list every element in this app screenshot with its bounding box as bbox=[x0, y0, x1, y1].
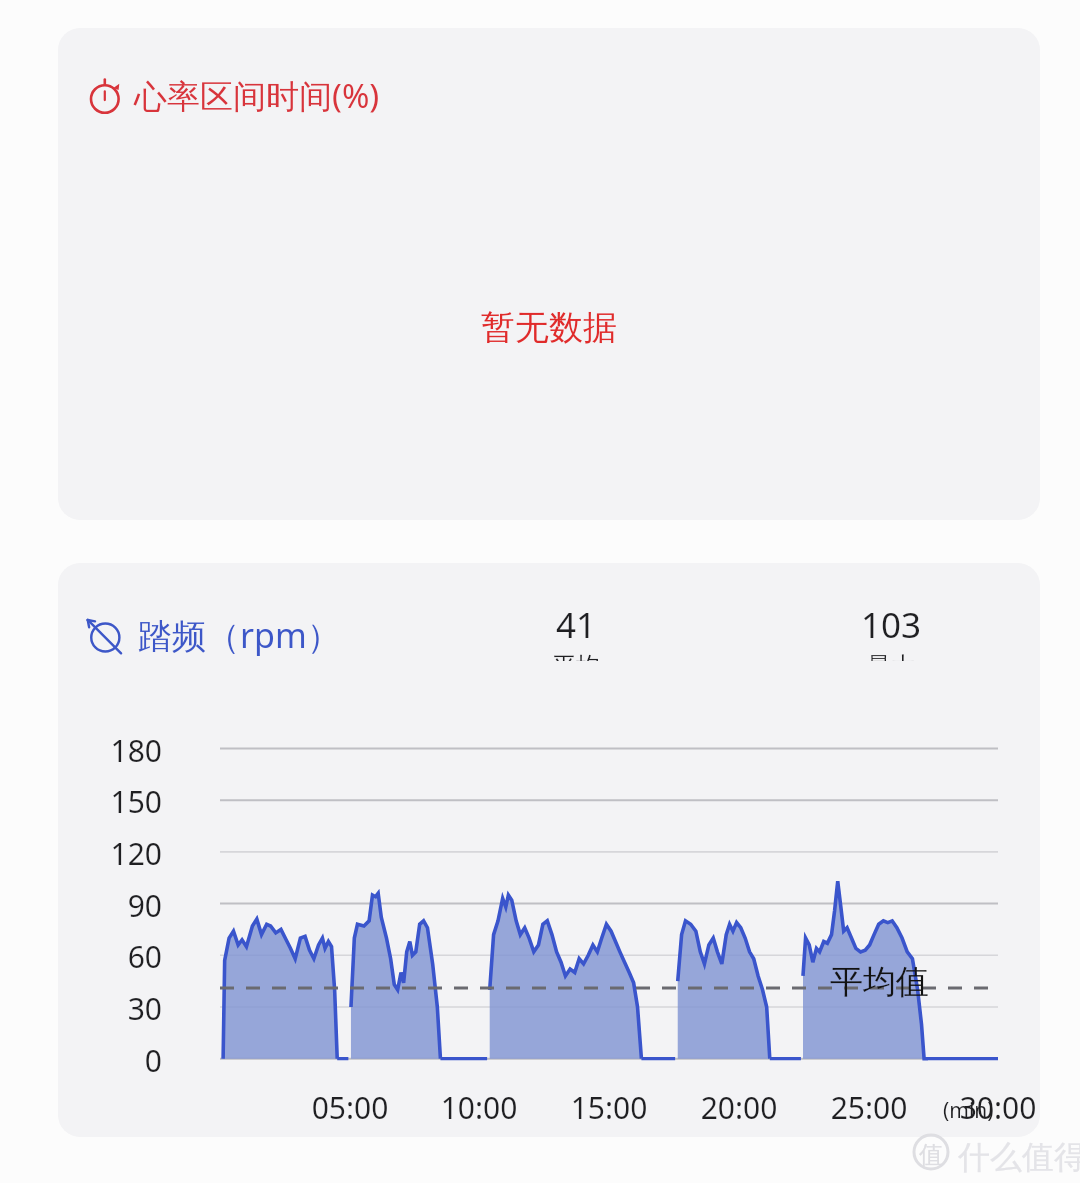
staticText: 平均值 bbox=[830, 961, 929, 1003]
staticText: 什么值得买 bbox=[958, 1137, 1080, 1177]
staticText: 180 bbox=[78, 730, 162, 771]
staticText: 心率区间时间(%) bbox=[134, 73, 380, 118]
staticText: 41 bbox=[556, 601, 597, 649]
staticText: 120 bbox=[78, 833, 162, 874]
staticText: 05:00 bbox=[285, 1087, 415, 1128]
staticText: 暂无数据 bbox=[481, 306, 617, 349]
staticText: 值 bbox=[919, 1140, 943, 1170]
staticText: 30 bbox=[78, 988, 162, 1029]
other: Cadence bbox=[86, 614, 128, 656]
staticText: 60 bbox=[78, 936, 162, 977]
button[interactable]: Stopwatch bbox=[58, 28, 1040, 520]
staticText: 踏频（rpm） bbox=[138, 612, 341, 658]
staticText: 90 bbox=[78, 885, 162, 926]
staticText: 平均 bbox=[552, 651, 600, 661]
staticText: 30:00 bbox=[933, 1087, 1040, 1128]
other: Stopwatch bbox=[86, 75, 126, 115]
staticText: 150 bbox=[78, 781, 162, 822]
staticText: (min) bbox=[943, 1096, 994, 1125]
staticText: 0 bbox=[78, 1040, 162, 1081]
staticText: 15:00 bbox=[544, 1087, 674, 1128]
staticText: 103 bbox=[861, 601, 922, 649]
staticText: 10:00 bbox=[414, 1087, 544, 1128]
staticText: 25:00 bbox=[804, 1087, 934, 1128]
button[interactable]: Cadence bbox=[58, 563, 1040, 1137]
staticText: 最大 bbox=[867, 651, 915, 661]
staticText: 20:00 bbox=[674, 1087, 804, 1128]
